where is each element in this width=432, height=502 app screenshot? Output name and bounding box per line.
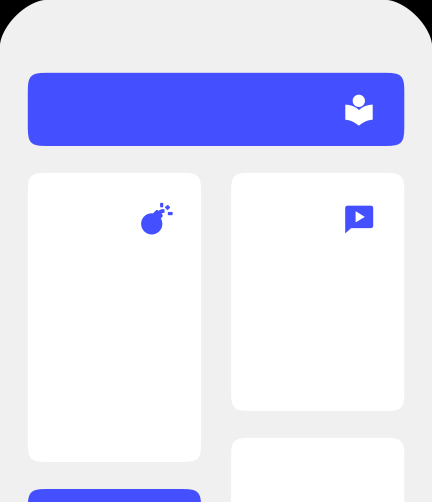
button[interactable]: Challenge — [28, 173, 201, 462]
button[interactable]: Reading — [28, 73, 404, 146]
button[interactable]: Watch — [231, 173, 404, 411]
button[interactable]: Practice — [28, 489, 201, 502]
